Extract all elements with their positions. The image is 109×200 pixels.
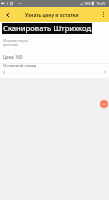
button[interactable]: More options (97, 7, 109, 22)
staticText: 78% (84, 1, 92, 6)
staticText: Узнать цену и остатки (25, 12, 79, 18)
staticText: 10:45 (96, 1, 106, 6)
staticText: Основной склад (3, 63, 37, 69)
staticText: Цена 160 (3, 54, 23, 60)
staticText: 5 (3, 70, 6, 75)
button[interactable]: Scan barcode (100, 100, 108, 108)
button[interactable]: Open details (100, 67, 109, 76)
staticText: Фломастеры (3, 38, 28, 43)
button[interactable]: Сканировать Штрихкод (2, 23, 92, 34)
button[interactable]: Back (0, 7, 16, 22)
staticText: Сканировать Штрихкод (3, 23, 92, 33)
staticText: детские (3, 42, 19, 47)
